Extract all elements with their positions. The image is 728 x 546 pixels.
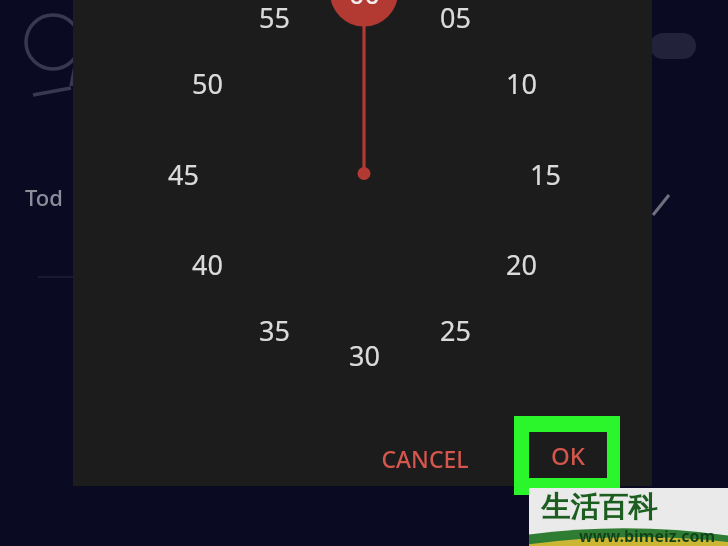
staticText: 10 [506, 65, 537, 102]
button[interactable]: 50 [182, 62, 232, 104]
button[interactable]: 15 [520, 153, 570, 195]
button[interactable]: 55 [249, 0, 299, 38]
staticText: Tod [25, 182, 63, 212]
staticText: 00 [349, 0, 380, 12]
staticText: 30 [349, 337, 380, 374]
staticText: 20 [506, 246, 537, 283]
staticText: 生活百科 [541, 489, 657, 526]
staticText: 45 [168, 156, 199, 193]
staticText: 40 [192, 246, 223, 283]
staticText: 05 [440, 0, 471, 36]
button[interactable]: 45 [158, 153, 208, 195]
button[interactable]: 40 [182, 243, 232, 285]
button[interactable]: 30 [339, 334, 389, 376]
button[interactable]: OK [529, 432, 607, 478]
staticText: CANCEL [381, 443, 469, 474]
button[interactable]: CANCEL [356, 436, 494, 480]
staticText: OK [551, 439, 585, 472]
button[interactable]: 20 [496, 243, 546, 285]
button[interactable]: 05 [430, 0, 480, 38]
staticText: 50 [192, 65, 223, 102]
staticText: 35 [259, 312, 290, 349]
staticText: 25 [440, 312, 471, 349]
staticText: 15 [530, 156, 561, 193]
staticText: www.bimeiz.com [579, 525, 716, 546]
staticText: 55 [259, 0, 290, 36]
other: Highlight [514, 416, 620, 495]
button[interactable]: 35 [249, 309, 299, 351]
button[interactable]: 25 [430, 309, 480, 351]
button[interactable]: 00 [339, 0, 389, 14]
button[interactable]: 10 [496, 62, 546, 104]
